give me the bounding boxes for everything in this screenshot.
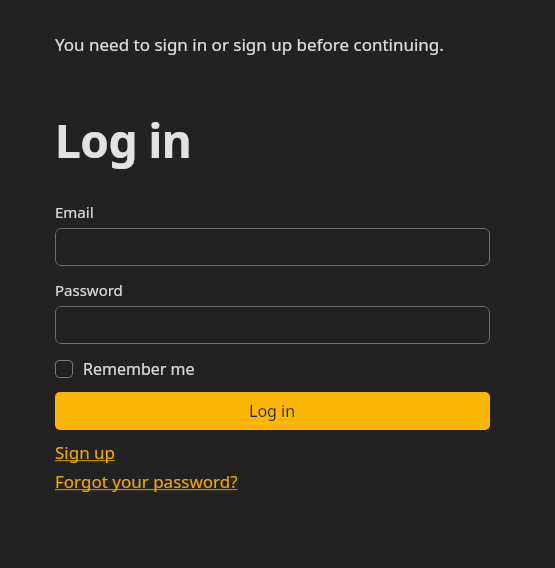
staticText: You need to sign in or sign up before co… [55,33,444,56]
staticText: Sign up [55,441,116,464]
staticText: Password [55,280,123,300]
staticText: Forgot your password? [55,470,238,493]
staticText: Log in [55,109,192,172]
button[interactable]: Text input field [55,306,490,344]
staticText: Email [55,202,94,222]
button[interactable]: Remember me [55,358,195,380]
button[interactable]: Forgot your password? [55,470,238,493]
staticText: Log in [249,400,296,422]
button[interactable]: Text input field [55,228,490,266]
button[interactable]: Log in [55,392,490,430]
button[interactable]: Sign up [55,441,116,464]
staticText: Remember me [83,358,195,380]
